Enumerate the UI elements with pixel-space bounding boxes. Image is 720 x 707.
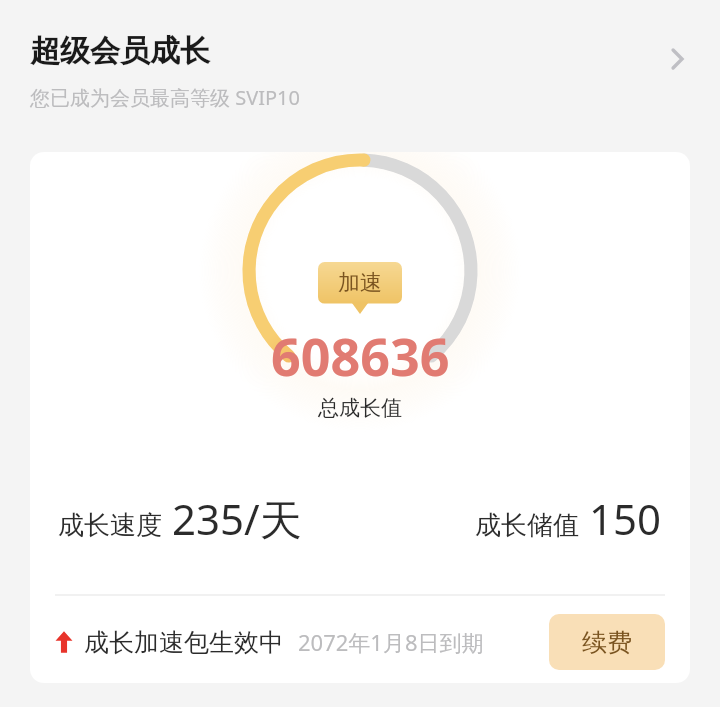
- staticText: 608636: [271, 320, 450, 391]
- staticText: 2072年1月8日到期: [298, 627, 484, 657]
- staticText: 235/天: [172, 490, 302, 547]
- staticText: 150: [589, 490, 662, 547]
- staticText: 成长速度: [58, 509, 162, 542]
- staticText: 总成长值: [318, 395, 402, 421]
- button[interactable]: 超级会员成长: [0, 0, 720, 152]
- staticText: 续费: [582, 627, 632, 658]
- button[interactable]: 续费: [549, 614, 665, 670]
- staticText: 超级会员成长: [30, 32, 210, 70]
- staticText: 您已成为会员最高等级 SVIP10: [30, 84, 300, 111]
- staticText: 成长储值: [475, 509, 579, 542]
- staticText: 加速: [338, 269, 382, 297]
- staticText: 成长加速包生效中: [84, 627, 284, 658]
- button[interactable]: 查看成长详情: [656, 38, 698, 80]
